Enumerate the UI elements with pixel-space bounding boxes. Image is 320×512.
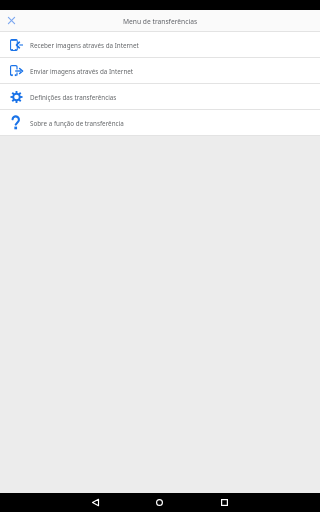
button[interactable]: Back — [86, 493, 105, 512]
staticText: Enviar imagens através da Internet — [30, 67, 134, 76]
button[interactable]: Definições das transferências — [0, 84, 320, 109]
button[interactable]: Enviar imagens através da Internet — [0, 58, 320, 83]
button[interactable]: Home — [150, 493, 169, 512]
button[interactable]: Close — [0, 10, 22, 31]
staticText: Menu de transferências — [123, 17, 198, 26]
button[interactable]: Recents — [215, 493, 234, 512]
button[interactable]: Receber imagens através da Internet — [0, 32, 320, 57]
staticText: Sobre a função de transferência — [30, 119, 124, 128]
staticText: Receber imagens através da Internet — [30, 41, 139, 50]
staticText: Definições das transferências — [30, 93, 117, 102]
button[interactable]: Sobre a função de transferência — [0, 110, 320, 135]
